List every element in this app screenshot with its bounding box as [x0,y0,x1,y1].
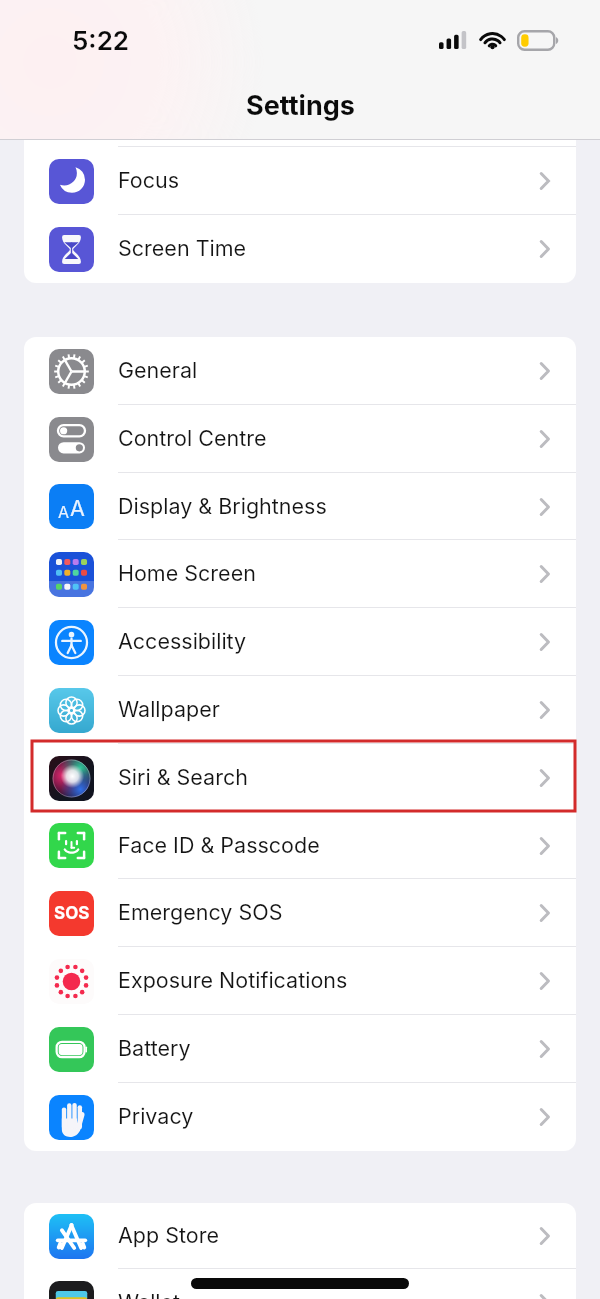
staticText: Display & Brightness [118,493,327,519]
staticText: Accessibility [118,628,247,654]
button[interactable]: Screen Time [24,215,576,283]
button[interactable]: General [24,337,576,405]
button[interactable]: Accessibility [24,608,576,676]
staticText: A [70,495,85,521]
staticText: 5:22 [72,25,130,56]
button[interactable]: Siri & Search [24,744,576,812]
staticText: A [58,502,70,521]
button[interactable]: SOS [24,879,576,947]
staticText: Wallpaper [118,696,220,722]
staticText: Siri & Search [118,764,248,790]
button[interactable]: Home Screen [24,540,576,608]
button[interactable]: A [24,473,576,540]
button[interactable]: Face ID & Passcode [24,812,576,879]
button[interactable]: App Store [24,1203,576,1269]
staticText: Privacy [118,1103,194,1129]
staticText: Exposure Notifications [118,967,348,993]
staticText: Control Centre [118,425,267,451]
button[interactable]: Privacy [24,1083,576,1151]
staticText: Emergency SOS [118,899,283,925]
staticText: Screen Time [118,235,247,261]
button[interactable]: Wallpaper [24,676,576,744]
button[interactable]: Focus [24,147,576,215]
button[interactable]: Control Centre [24,405,576,473]
staticText: Face ID & Passcode [118,832,320,858]
staticText: Home Screen [118,560,256,586]
button[interactable]: Exposure Notifications [24,947,576,1015]
button[interactable]: Battery [24,1015,576,1083]
staticText: General [118,357,198,383]
button[interactable]: Wallet [24,1269,576,1299]
staticText: Focus [118,167,180,193]
staticText: Battery [118,1035,191,1061]
staticText: SOS [54,903,90,924]
staticText: App Store [118,1222,219,1248]
staticText: Wallet [118,1289,181,1299]
staticText: Settings [246,89,355,122]
